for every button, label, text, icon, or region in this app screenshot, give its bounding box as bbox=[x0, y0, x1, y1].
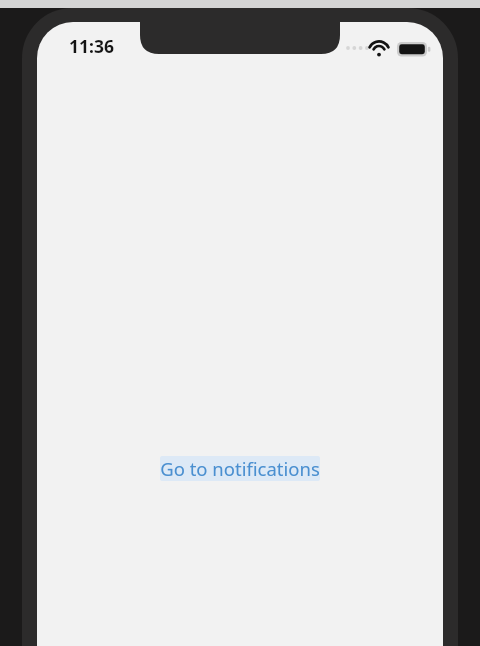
button[interactable]: Go to notifications bbox=[160, 456, 320, 481]
staticText: 11:36 bbox=[69, 34, 114, 58]
staticText: Go to notifications bbox=[160, 456, 320, 481]
